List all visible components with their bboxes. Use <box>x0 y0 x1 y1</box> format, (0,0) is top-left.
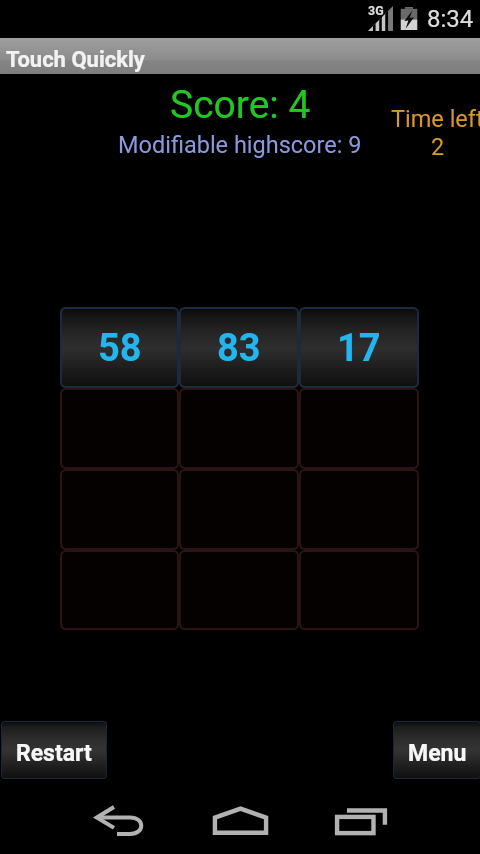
button[interactable]: 83 <box>179 307 299 388</box>
button[interactable]: Restart <box>2 722 106 778</box>
staticText: 83 <box>217 326 261 371</box>
button[interactable] <box>299 550 419 630</box>
button[interactable]: Menu <box>394 722 480 778</box>
button[interactable] <box>299 469 419 550</box>
staticText: Touch Quickly <box>6 47 145 73</box>
staticText: Time left <box>391 105 480 133</box>
button[interactable] <box>60 469 179 550</box>
staticText: 8:34 <box>427 5 474 33</box>
button[interactable] <box>299 388 419 469</box>
button[interactable]: Back <box>84 794 156 848</box>
button[interactable]: Home <box>204 794 276 848</box>
button[interactable]: Recent apps <box>325 794 397 848</box>
button[interactable] <box>60 550 179 630</box>
button[interactable] <box>179 550 299 630</box>
staticText: Score: 4 <box>170 82 311 128</box>
staticText: 58 <box>98 326 142 371</box>
staticText: Restart <box>16 740 92 767</box>
staticText: Modifiable highscore: 9 <box>118 131 362 159</box>
staticText: 17 <box>337 326 381 371</box>
staticText: 3G <box>368 3 384 18</box>
button[interactable]: 58 <box>60 307 179 388</box>
button[interactable]: 17 <box>299 307 419 388</box>
button[interactable] <box>179 388 299 469</box>
staticText: Menu <box>408 740 467 767</box>
button[interactable] <box>60 388 179 469</box>
button[interactable] <box>179 469 299 550</box>
staticText: 2 <box>431 133 445 161</box>
